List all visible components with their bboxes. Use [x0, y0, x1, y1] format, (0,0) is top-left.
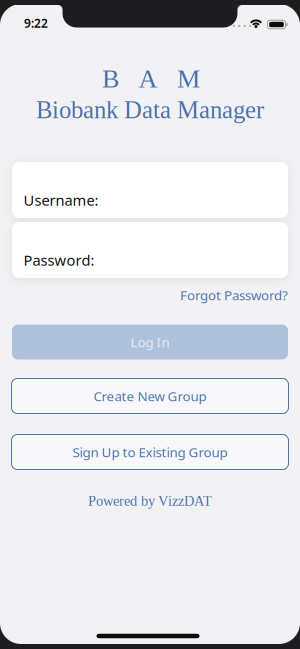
- button[interactable]: Forgot Password?: [180, 286, 288, 304]
- staticText: Forgot Password?: [180, 286, 288, 304]
- staticText: A: [138, 64, 157, 93]
- button[interactable]: Log In: [12, 324, 288, 359]
- button[interactable]: Username:: [12, 162, 288, 218]
- staticText: Create New Group: [93, 387, 206, 405]
- staticText: Password:: [23, 250, 94, 270]
- button[interactable]: Sign Up to Existing Group: [11, 434, 288, 469]
- staticText: Biobank Data Manager: [36, 96, 264, 124]
- button[interactable]: Password:: [12, 222, 288, 278]
- staticText: Sign Up to Existing Group: [72, 443, 227, 461]
- staticText: B: [102, 64, 119, 93]
- button[interactable]: Create New Group: [11, 378, 288, 413]
- staticText: 9:22: [24, 15, 48, 31]
- staticText: M: [177, 64, 200, 93]
- staticText: Username:: [23, 190, 98, 210]
- staticText: Log In: [130, 333, 169, 351]
- staticText: Powered by VizzDAT: [88, 493, 212, 509]
